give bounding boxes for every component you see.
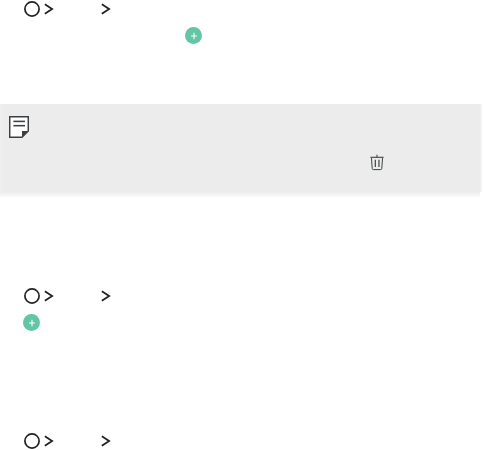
button[interactable]: Note — [9, 116, 29, 138]
button[interactable]: Navigate — [24, 288, 53, 304]
button[interactable]: Delete — [370, 152, 384, 170]
button[interactable]: Navigate — [24, 1, 53, 17]
button[interactable]: Note — [0, 104, 483, 198]
button[interactable]: Next — [101, 435, 110, 447]
button[interactable]: Next — [101, 290, 110, 302]
button[interactable]: Navigate — [24, 433, 53, 449]
button[interactable]: Next — [101, 3, 110, 15]
button[interactable]: Add — [185, 27, 202, 44]
button[interactable]: Add — [23, 314, 40, 331]
